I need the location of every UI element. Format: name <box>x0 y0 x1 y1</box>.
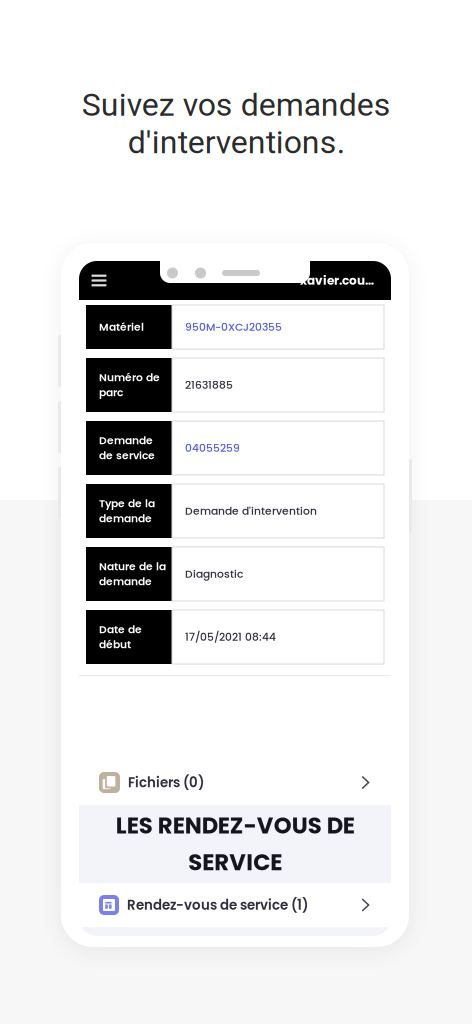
button[interactable]: Fichiers (0) <box>79 760 391 805</box>
staticText: Date de début <box>99 622 142 652</box>
staticText: LES RENDEZ-VOUS DE SERVICE <box>115 810 354 878</box>
staticText: 04055259 <box>185 440 240 455</box>
staticText: 21631885 <box>185 377 233 392</box>
staticText: Type de la demande <box>99 496 155 526</box>
staticText: Nature de la demande <box>99 559 166 589</box>
staticText: Diagnostic <box>185 566 243 581</box>
staticText: Fichiers (0) <box>128 773 204 792</box>
staticText: 17/05/2021 08:44 <box>185 629 276 644</box>
staticText: 950M-0XCJ20355 <box>185 319 282 334</box>
staticText: Demande de service <box>99 433 155 463</box>
button[interactable]: Menu <box>79 261 119 300</box>
staticText: Suivez vos demandes d'interventions. <box>81 86 390 161</box>
staticText: xavier.cou… <box>300 272 374 289</box>
button[interactable]: Rendez-vous de service (1) <box>79 883 391 927</box>
staticText: Numéro de parc <box>99 370 160 400</box>
staticText: Matériel <box>99 319 144 334</box>
staticText: Rendez-vous de service (1) <box>127 896 308 914</box>
staticText: Demande d'intervention <box>185 503 317 518</box>
